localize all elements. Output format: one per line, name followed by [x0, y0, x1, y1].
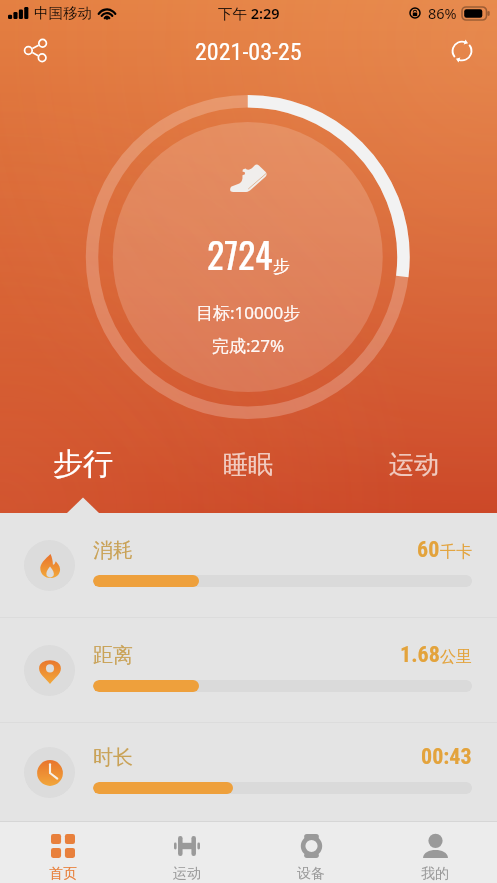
button[interactable]: Refresh [440, 29, 483, 72]
button[interactable]: 步行 [0, 440, 165, 488]
staticText: 设备 [297, 865, 325, 883]
staticText: 我的 [421, 865, 449, 883]
staticText: 完成:27% [212, 334, 285, 357]
staticText: 睡眠 [223, 449, 273, 480]
staticText: 运动 [173, 865, 201, 883]
staticText: 目标:10000步 [196, 301, 301, 324]
staticText: 距离 [93, 643, 133, 668]
staticText: 下午 2:29 [218, 3, 280, 23]
button[interactable]: 睡眠 [165, 440, 331, 488]
button[interactable]: 时长 [0, 723, 497, 821]
button[interactable]: 我的 [373, 822, 497, 883]
staticText: 首页 [49, 865, 77, 883]
staticText: 2021-03-25 [195, 38, 302, 66]
staticText: 1.68 [400, 642, 440, 668]
button[interactable]: 消耗 [0, 513, 497, 617]
staticText: 步 [273, 256, 290, 277]
staticText: 千卡 [440, 542, 472, 562]
button[interactable]: 运动 [331, 440, 497, 488]
staticText: 00:43 [421, 744, 472, 770]
staticText: 中国移动 [34, 4, 92, 22]
staticText: 2724 [207, 227, 273, 280]
staticText: 公里 [440, 647, 472, 667]
staticText: 86% [428, 3, 457, 23]
button[interactable]: 距离 [0, 618, 497, 722]
staticText: 步行 [53, 445, 113, 483]
button[interactable]: 首页 [0, 822, 125, 883]
staticText: 运动 [389, 449, 439, 480]
staticText: 时长 [93, 745, 133, 770]
staticText: 消耗 [93, 538, 133, 563]
staticText: 60 [417, 537, 440, 563]
button[interactable]: 运动 [125, 822, 249, 883]
button[interactable]: Share [14, 29, 57, 72]
button[interactable]: 设备 [249, 822, 373, 883]
